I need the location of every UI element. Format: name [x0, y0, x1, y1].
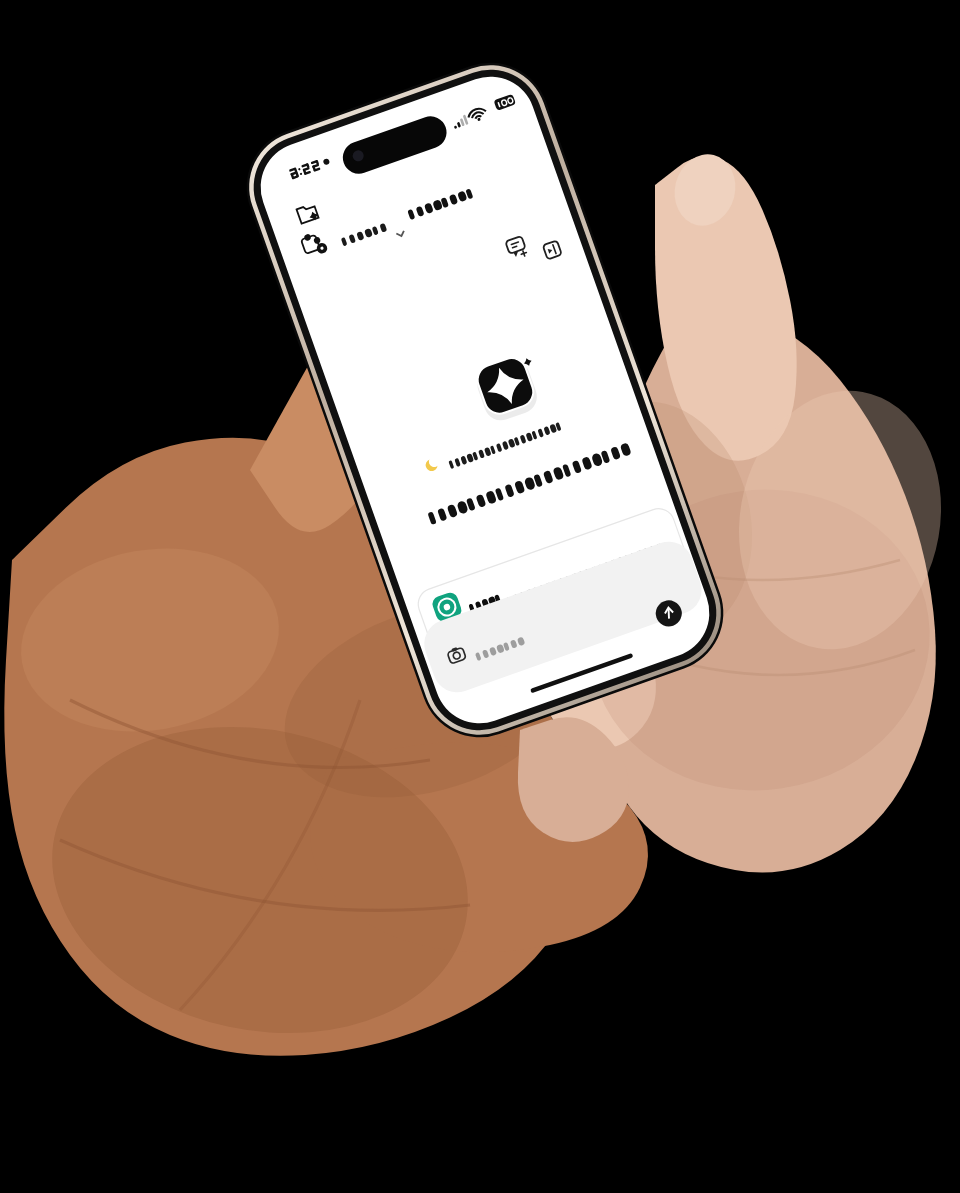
button[interactable]: Camera [60, 556, 90, 586]
button[interactable]: Send [226, 556, 256, 586]
button[interactable]: Open sidebar [234, 150, 268, 176]
button[interactable]: gpt4o model [60, 506, 210, 546]
